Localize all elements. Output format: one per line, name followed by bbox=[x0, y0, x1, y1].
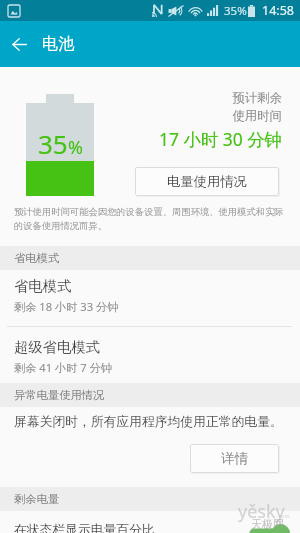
button[interactable]: 详情 bbox=[190, 444, 279, 473]
staticText: yěsky bbox=[238, 499, 285, 524]
staticText: 预计剩余 bbox=[232, 90, 282, 106]
staticText: 剩余电量 bbox=[14, 492, 60, 506]
staticText: 电池 bbox=[42, 34, 74, 54]
staticText: 35 bbox=[38, 126, 68, 161]
staticText: 省电模式 bbox=[14, 277, 72, 295]
staticText: 异常电量使用情况 bbox=[14, 388, 105, 402]
staticText: 屏幕关闭时，所有应用程序均使用正常的电量。 bbox=[14, 414, 283, 430]
staticText: 剩余 41 小时 7 分钟 bbox=[14, 360, 112, 375]
button[interactable]: Back bbox=[0, 25, 38, 63]
staticText: 超级省电模式 bbox=[14, 338, 100, 356]
staticText: 详情 bbox=[221, 450, 249, 467]
button[interactable]: 省电模式 bbox=[0, 270, 300, 326]
staticText: 使用时间 bbox=[232, 108, 282, 124]
staticText: 剩余 18 小时 33 分钟 bbox=[14, 299, 119, 314]
staticText: 35% bbox=[224, 3, 247, 19]
staticText: 预计使用时间可能会因您的设备设置、周围环境、使用模式和实际 bbox=[14, 206, 284, 218]
button[interactable]: 电量使用情况 bbox=[135, 167, 279, 196]
staticText: 的设备使用情况而异。 bbox=[14, 220, 107, 232]
staticText: .com bbox=[277, 512, 290, 519]
staticText: 14:58 bbox=[262, 2, 294, 19]
staticText: 电量使用情况 bbox=[167, 173, 247, 190]
staticText: 天极网 bbox=[251, 517, 284, 531]
staticText: % bbox=[68, 135, 83, 160]
staticText: 在状态栏显示电量百分比 bbox=[14, 522, 155, 533]
button[interactable]: 超级省电模式 bbox=[0, 331, 300, 387]
staticText: 17 小时 30 分钟 bbox=[159, 127, 282, 151]
staticText: 省电模式 bbox=[14, 251, 60, 265]
